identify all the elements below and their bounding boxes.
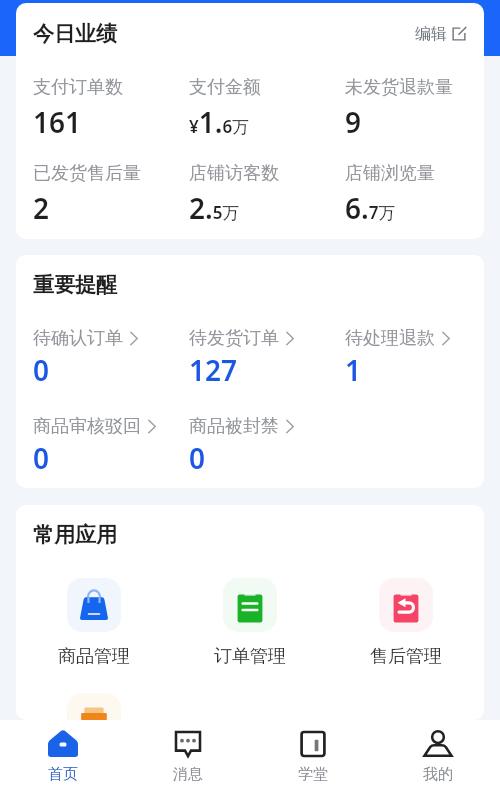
- staticText: 2.5万: [189, 189, 240, 227]
- button[interactable]: 编辑: [412, 20, 469, 48]
- staticText: 0: [189, 439, 206, 477]
- staticText: 待发货订单: [189, 327, 279, 350]
- staticText: 支付金额: [189, 76, 261, 99]
- staticText: 订单管理: [214, 645, 286, 668]
- other: 首页: [48, 729, 78, 759]
- staticText: 店铺浏览量: [345, 162, 435, 185]
- button[interactable]: 商品审核驳回: [16, 415, 172, 477]
- staticText: 编辑: [415, 24, 447, 44]
- button[interactable]: 待处理退款: [328, 327, 484, 389]
- staticText: 未发货退款量: [345, 76, 453, 99]
- staticText: 学堂: [298, 765, 328, 784]
- button[interactable]: 学堂: [250, 720, 375, 789]
- button[interactable]: 售后管理: [328, 578, 484, 668]
- staticText: 今日业绩: [33, 21, 117, 47]
- staticText: 首页: [48, 765, 78, 784]
- button[interactable]: 我的: [375, 720, 500, 789]
- staticText: 6.7万: [345, 189, 396, 227]
- other: 消息: [173, 729, 203, 759]
- staticText: 161: [33, 103, 82, 141]
- staticText: 127: [189, 351, 238, 389]
- staticText: 0: [33, 351, 50, 389]
- button[interactable]: 消息: [125, 720, 250, 789]
- button[interactable]: 首页: [0, 720, 125, 789]
- button[interactable]: 订单管理: [172, 578, 328, 668]
- staticText: 重要提醒: [33, 272, 117, 298]
- staticText: 我的: [423, 765, 453, 784]
- staticText: ¥1.6万: [189, 103, 250, 141]
- other: 我的: [423, 729, 453, 759]
- button[interactable]: 店铺浏览量: [328, 162, 484, 227]
- staticText: 店铺访客数: [189, 162, 279, 185]
- button[interactable]: 待发货订单: [172, 327, 328, 389]
- button[interactable]: 支付订单数: [16, 76, 172, 141]
- staticText: 1: [345, 351, 362, 389]
- button[interactable]: 商品被封禁: [172, 415, 328, 477]
- staticText: 商品被封禁: [189, 415, 279, 438]
- staticText: 待确认订单: [33, 327, 123, 350]
- other: 学堂: [298, 729, 328, 759]
- staticText: 售后管理: [370, 645, 442, 668]
- button[interactable]: 待确认订单: [16, 327, 172, 389]
- staticText: 商品管理: [58, 645, 130, 668]
- button[interactable]: 已发货售后量: [16, 162, 172, 227]
- staticText: 2: [33, 189, 50, 227]
- staticText: 0: [33, 439, 50, 477]
- staticText: 已发货售后量: [33, 162, 141, 185]
- button[interactable]: 未发货退款量: [328, 76, 484, 141]
- staticText: 支付订单数: [33, 76, 123, 99]
- button[interactable]: 店铺访客数: [172, 162, 328, 227]
- staticText: 待处理退款: [345, 327, 435, 350]
- button[interactable]: 商品管理: [16, 578, 172, 668]
- staticText: 商品审核驳回: [33, 415, 141, 438]
- staticText: 常用应用: [33, 522, 117, 548]
- button[interactable]: 支付金额: [172, 76, 328, 141]
- staticText: 9: [345, 103, 362, 141]
- other: 编辑: [452, 27, 466, 41]
- button[interactable]: [16, 693, 172, 720]
- staticText: 消息: [173, 765, 203, 784]
